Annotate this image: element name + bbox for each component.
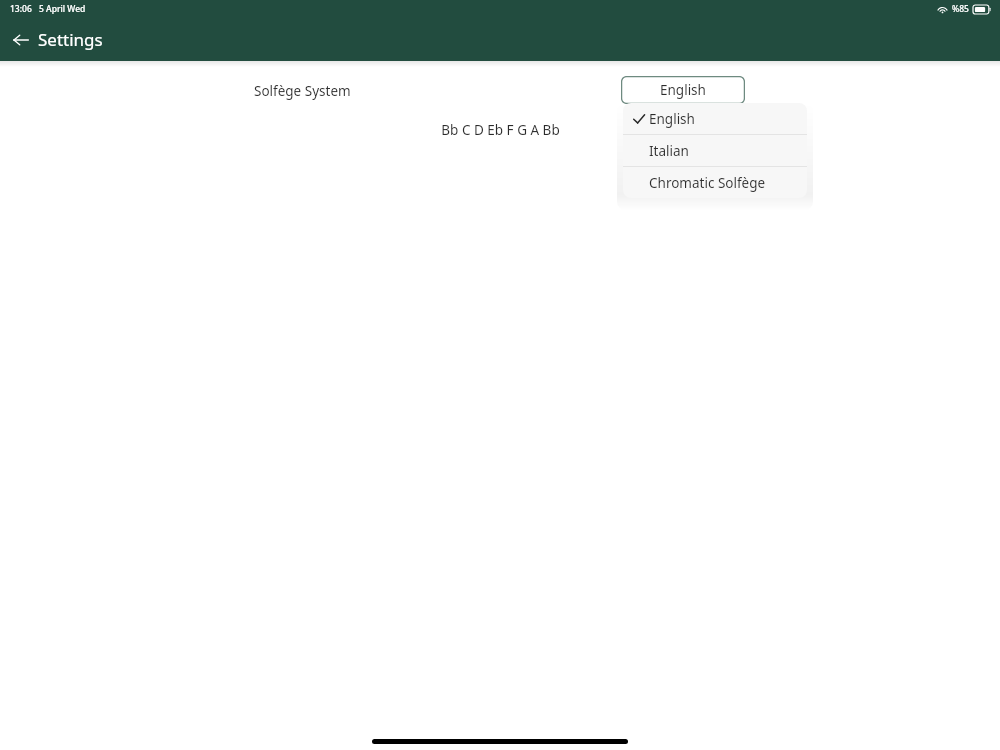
button[interactable]: English: [621, 76, 745, 104]
button[interactable]: Chromatic Solfège: [623, 167, 807, 198]
button[interactable]: English: [623, 103, 807, 134]
button[interactable]: Italian: [623, 135, 807, 166]
staticText: Settings: [38, 28, 103, 51]
staticText: Italian: [649, 142, 689, 160]
staticText: English: [649, 110, 695, 128]
staticText: 13:06: [10, 3, 32, 15]
staticText: Solfège System: [254, 82, 351, 100]
staticText: English: [660, 81, 706, 99]
staticText: Bb C D Eb F G A Bb: [441, 121, 560, 139]
button[interactable]: Back: [6, 25, 36, 55]
staticText: %85: [952, 3, 969, 15]
staticText: Chromatic Solfège: [649, 174, 766, 192]
staticText: 5 April Wed: [39, 3, 86, 15]
